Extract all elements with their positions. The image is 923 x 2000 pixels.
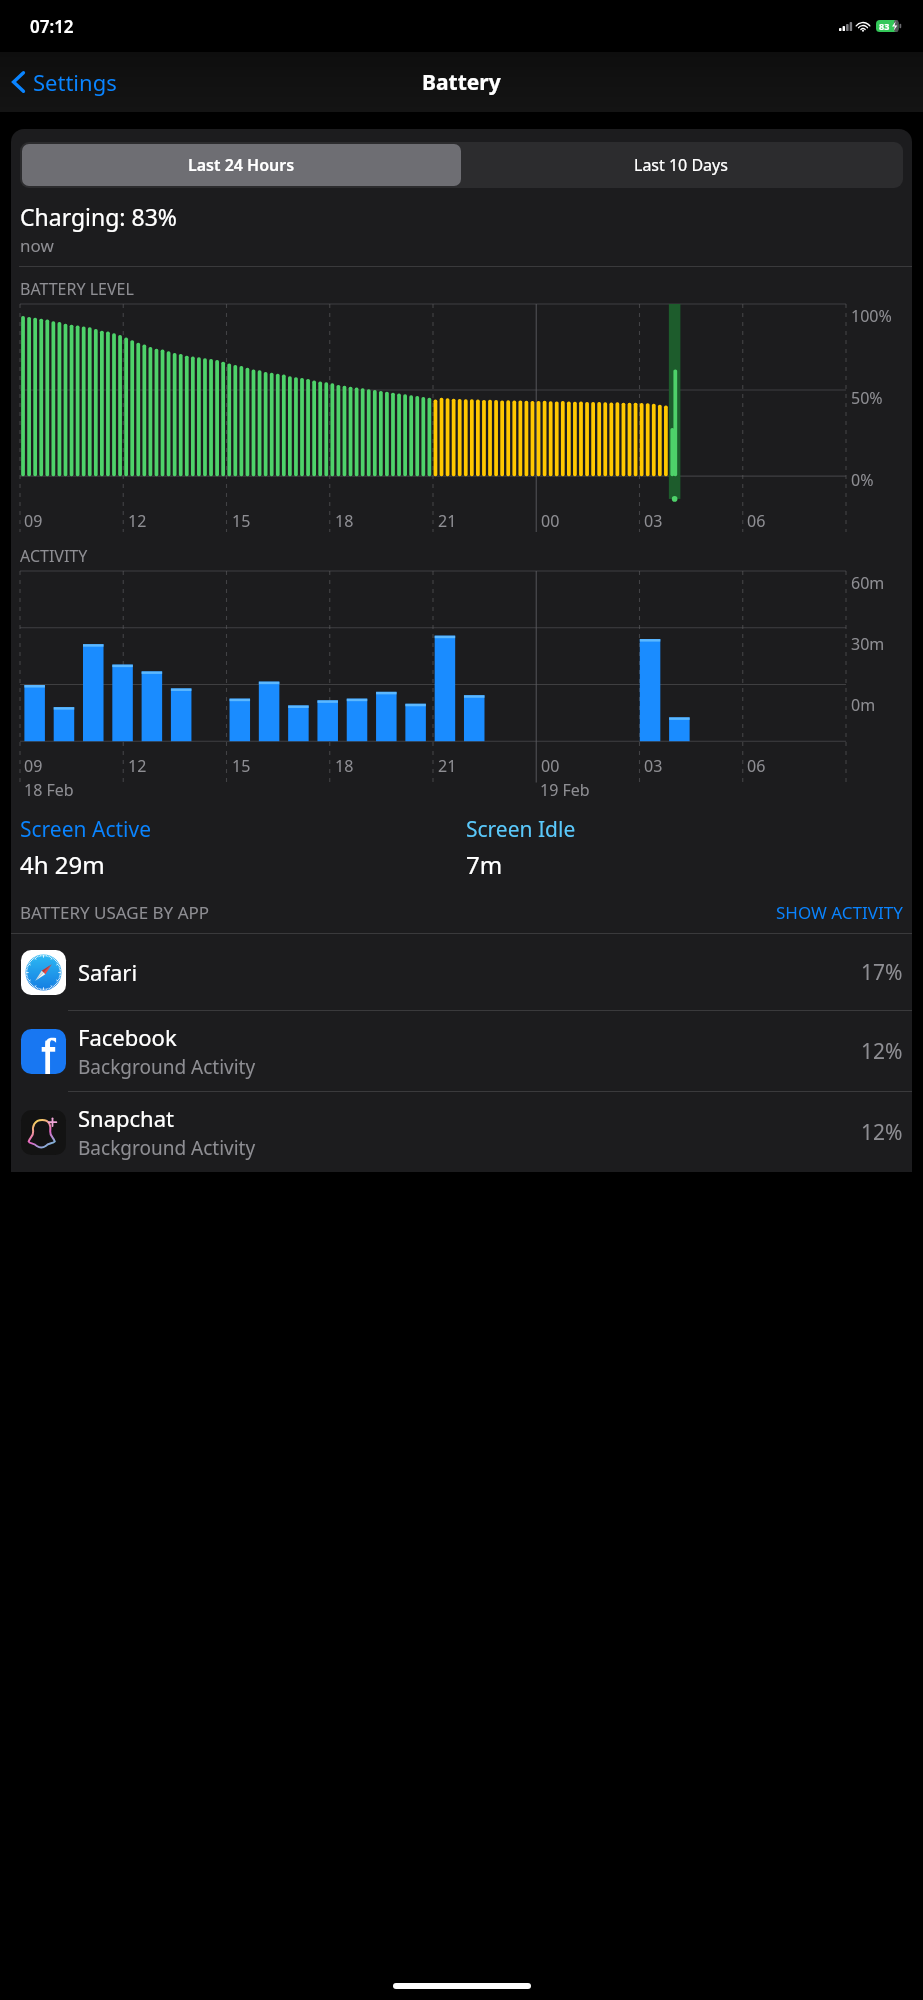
button[interactable]: SHOW ACTIVITY <box>776 901 903 924</box>
staticText: 09 <box>24 510 43 532</box>
staticText: 21 <box>438 510 457 532</box>
button[interactable]: Last 24 Hours <box>22 144 461 186</box>
staticText: 0m <box>851 694 876 716</box>
staticText: 07:12 <box>30 15 74 38</box>
button[interactable]: Last 10 Days <box>461 144 901 186</box>
staticText: Last 10 Days <box>634 154 728 176</box>
staticText: 17% <box>861 958 903 987</box>
staticText: 06 <box>747 755 766 777</box>
staticText: 50% <box>851 387 883 409</box>
button[interactable]: Settings <box>6 61 123 103</box>
staticText: 12 <box>128 510 147 532</box>
staticText: 12% <box>861 1118 903 1147</box>
staticText: 0% <box>851 469 874 491</box>
staticText: 19 Feb <box>540 779 590 801</box>
staticText: 83 <box>879 20 890 32</box>
button[interactable]: Snapchat <box>11 1092 912 1172</box>
staticText: 12 <box>128 755 147 777</box>
staticText: Snapchat <box>78 1103 174 1133</box>
staticText: ACTIVITY <box>20 545 88 567</box>
staticText: Last 24 Hours <box>188 154 295 176</box>
staticText: now <box>20 234 54 257</box>
staticText: 06 <box>747 510 766 532</box>
staticText: 15 <box>232 755 251 777</box>
staticText: 100% <box>851 305 892 327</box>
staticText: 4h 29m <box>20 848 105 881</box>
staticText: 00 <box>541 510 560 532</box>
staticText: Screen Active <box>20 815 151 844</box>
staticText: 21 <box>438 755 457 777</box>
staticText: 18 Feb <box>24 779 74 801</box>
staticText: 30m <box>851 633 885 655</box>
staticText: 7m <box>466 848 503 881</box>
staticText: BATTERY USAGE BY APP <box>20 901 210 924</box>
staticText: Screen Idle <box>466 815 576 844</box>
staticText: Settings <box>33 67 117 97</box>
staticText: 12% <box>861 1037 903 1066</box>
staticText: BATTERY LEVEL <box>20 278 134 300</box>
staticText: 03 <box>644 755 663 777</box>
staticText: 18 <box>335 755 354 777</box>
staticText: Background Activity <box>78 1054 256 1080</box>
staticText: Charging: 83% <box>20 201 177 232</box>
staticText: 09 <box>24 755 43 777</box>
staticText: 18 <box>335 510 354 532</box>
staticText: 03 <box>644 510 663 532</box>
staticText: Safari <box>78 957 138 987</box>
staticText: 60m <box>851 572 885 594</box>
staticText: 15 <box>232 510 251 532</box>
staticText: 00 <box>541 755 560 777</box>
button[interactable]: Facebook <box>11 1011 912 1091</box>
staticText: Background Activity <box>78 1135 256 1161</box>
button[interactable]: Safari <box>11 934 912 1010</box>
staticText: SHOW ACTIVITY <box>776 901 903 924</box>
staticText: Battery <box>422 68 501 97</box>
staticText: Facebook <box>78 1022 177 1052</box>
